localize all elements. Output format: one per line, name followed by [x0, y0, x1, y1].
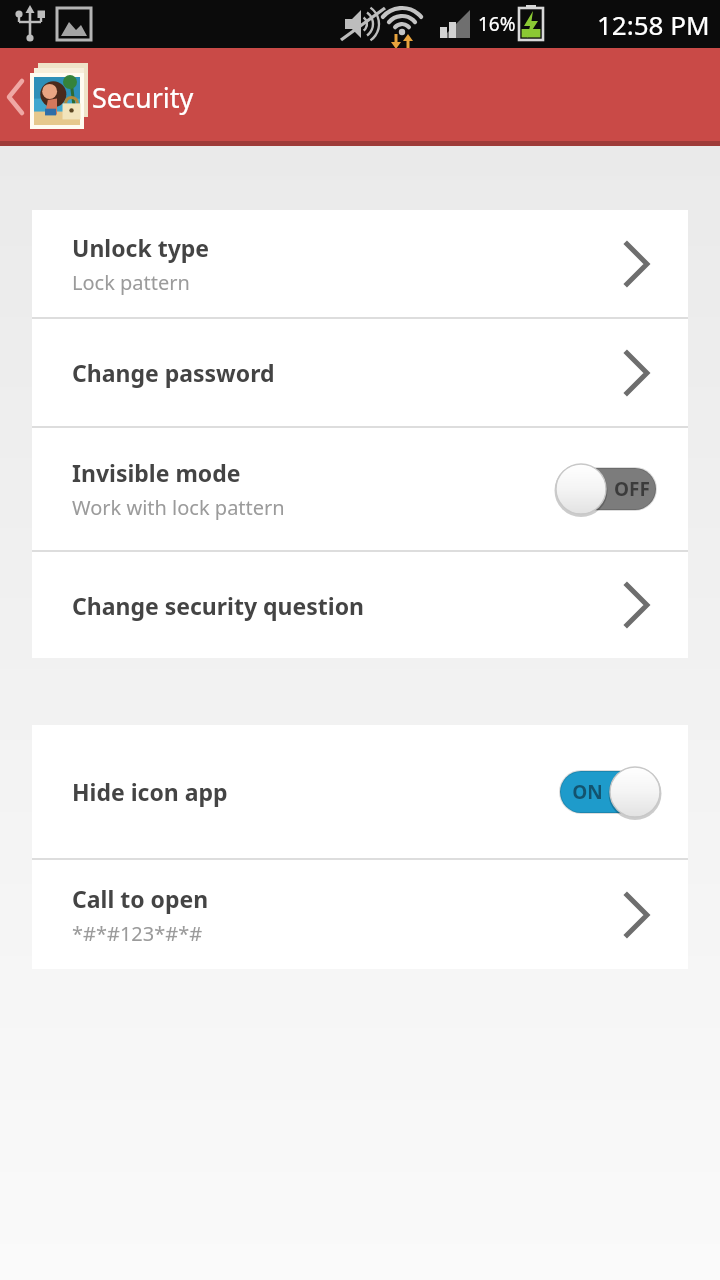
button[interactable]: Call to open [32, 860, 688, 969]
staticText: Unlock type [72, 232, 210, 263]
staticText: 16% [478, 11, 516, 37]
staticText: *#*#123*#*# [72, 920, 203, 947]
staticText: Call to open [72, 883, 209, 914]
staticText: Security [92, 79, 194, 116]
button[interactable]: Change password [32, 319, 688, 426]
staticText: Change security question [72, 590, 364, 621]
button[interactable]: Invisible mode [32, 428, 688, 550]
button[interactable]: Hide icon app on [556, 766, 664, 818]
button[interactable]: Invisible mode off [556, 463, 664, 515]
staticText: Lock pattern [72, 269, 190, 296]
staticText: Change password [72, 357, 275, 388]
button[interactable]: Back [0, 48, 92, 146]
staticText: Invisible mode [72, 457, 241, 488]
staticText: OFF [614, 476, 650, 502]
button[interactable]: Unlock type [32, 210, 688, 317]
button[interactable]: Change security question [32, 552, 688, 658]
staticText: Work with lock pattern [72, 494, 285, 521]
staticText: 12:58 PM [597, 7, 710, 42]
button[interactable]: Hide icon app [32, 725, 688, 858]
staticText: ON [572, 779, 603, 805]
staticText: Hide icon app [72, 776, 228, 807]
